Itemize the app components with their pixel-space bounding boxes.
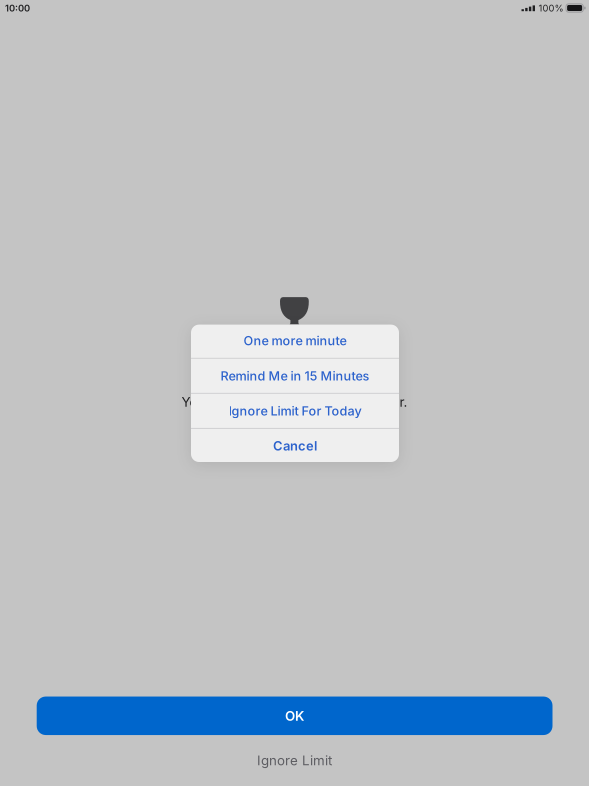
staticText: Ignore Limit [257, 752, 332, 768]
staticText: One more minute [243, 333, 346, 348]
button[interactable]: Cancel [191, 429, 399, 463]
button[interactable]: Remind Me in 15 Minutes [191, 359, 399, 393]
button[interactable]: OK [37, 696, 552, 735]
staticText: Cancel [273, 438, 317, 454]
staticText: 100% [539, 2, 564, 14]
staticText: Remind Me in 15 Minutes [220, 368, 369, 383]
staticText: OK [285, 708, 304, 724]
staticText: You've reached your limit for Timer. [181, 394, 407, 410]
button[interactable]: One more minute [191, 324, 399, 358]
button[interactable]: Ignore Limit For Today [191, 394, 399, 428]
button[interactable]: Ignore Limit [194, 747, 394, 773]
staticText: 10:00 [5, 2, 30, 14]
staticText: Ignore Limit For Today [228, 403, 361, 418]
